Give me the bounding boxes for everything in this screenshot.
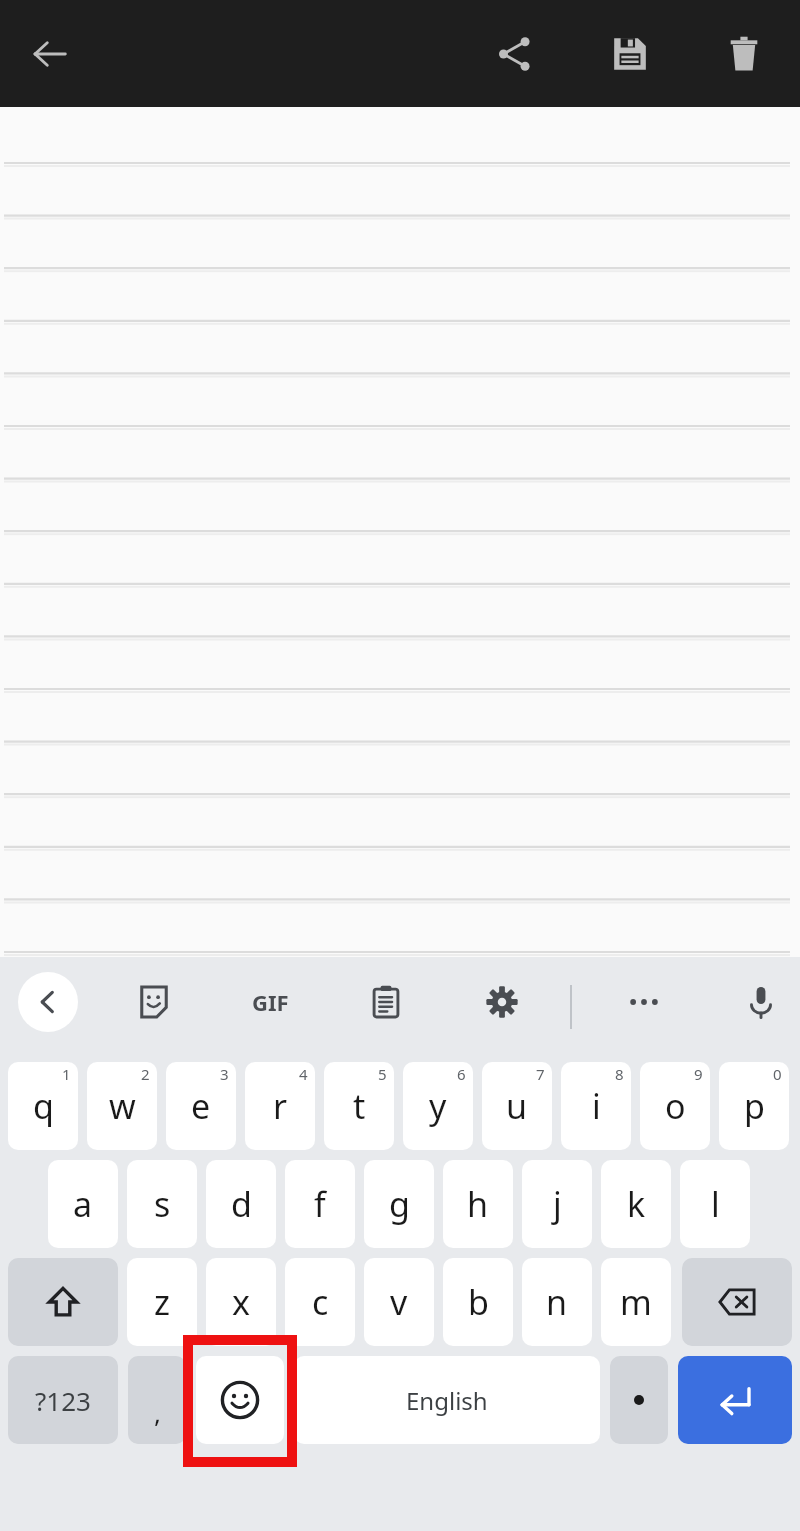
button[interactable]: g <box>364 1160 434 1248</box>
staticText: c <box>312 1279 329 1325</box>
button[interactable]: m <box>601 1258 671 1346</box>
staticText: 9 <box>694 1064 703 1084</box>
button[interactable]: Stickers <box>124 972 184 1032</box>
button[interactable]: Emoji <box>196 1356 284 1444</box>
staticText: j <box>553 1181 562 1227</box>
button[interactable]: j <box>522 1160 592 1248</box>
staticText: 0 <box>773 1064 782 1084</box>
button[interactable]: GIF <box>240 972 300 1032</box>
staticText: 4 <box>299 1064 308 1084</box>
staticText: g <box>389 1181 410 1227</box>
staticText: GIF <box>252 987 289 1017</box>
staticText: English <box>406 1384 488 1417</box>
staticText: t <box>353 1083 366 1129</box>
staticText: x <box>232 1279 250 1325</box>
button[interactable]: Enter <box>678 1356 792 1444</box>
button[interactable]: Save <box>600 24 660 84</box>
staticText: u <box>506 1083 528 1129</box>
button[interactable]: u <box>482 1062 552 1150</box>
button[interactable]: English <box>294 1356 600 1444</box>
button[interactable]: Close toolbar <box>18 972 78 1032</box>
button[interactable]: Comma <box>128 1356 186 1444</box>
button[interactable]: s <box>127 1160 197 1248</box>
staticText: 3 <box>220 1064 229 1084</box>
staticText: 5 <box>378 1064 387 1084</box>
staticText: 6 <box>457 1064 466 1084</box>
staticText: , <box>154 1395 161 1430</box>
button[interactable]: ?123 <box>8 1356 118 1444</box>
button[interactable]: More options <box>614 972 674 1032</box>
button[interactable]: a <box>48 1160 118 1248</box>
staticText: v <box>390 1279 408 1325</box>
button[interactable]: k <box>601 1160 671 1248</box>
staticText: e <box>191 1083 211 1129</box>
staticText: l <box>711 1181 720 1227</box>
button[interactable]: q <box>8 1062 78 1150</box>
button[interactable]: e <box>166 1062 236 1150</box>
button[interactable]: t <box>324 1062 394 1150</box>
staticText: y <box>429 1083 447 1129</box>
button[interactable]: Delete <box>714 24 774 84</box>
button[interactable]: l <box>680 1160 750 1248</box>
staticText: r <box>273 1083 288 1129</box>
button[interactable]: Settings <box>472 972 532 1032</box>
button[interactable]: v <box>364 1258 434 1346</box>
staticText: s <box>154 1181 171 1227</box>
staticText: f <box>314 1181 326 1227</box>
staticText: m <box>620 1279 652 1325</box>
button[interactable]: f <box>285 1160 355 1248</box>
button[interactable]: r <box>245 1062 315 1150</box>
button[interactable]: h <box>443 1160 513 1248</box>
staticText: w <box>109 1083 136 1129</box>
staticText: z <box>154 1279 170 1325</box>
staticText: 7 <box>536 1064 545 1084</box>
staticText: n <box>546 1279 568 1325</box>
button[interactable]: c <box>285 1258 355 1346</box>
staticText: d <box>231 1181 252 1227</box>
staticText: a <box>73 1181 93 1227</box>
button[interactable]: Back <box>20 24 80 84</box>
button[interactable]: Voice input <box>731 972 791 1032</box>
button[interactable]: d <box>206 1160 276 1248</box>
staticText: k <box>627 1181 646 1227</box>
button[interactable]: w <box>87 1062 157 1150</box>
staticText: p <box>744 1083 765 1129</box>
button[interactable]: Share <box>485 24 545 84</box>
button[interactable]: Backspace <box>682 1258 792 1346</box>
staticText: ?123 <box>35 1383 91 1418</box>
button[interactable]: o <box>640 1062 710 1150</box>
button[interactable]: i <box>561 1062 631 1150</box>
button[interactable]: b <box>443 1258 513 1346</box>
button[interactable]: n <box>522 1258 592 1346</box>
button[interactable]: Shift <box>8 1258 118 1346</box>
staticText: 1 <box>62 1064 71 1084</box>
button[interactable] <box>0 107 800 957</box>
staticText: h <box>467 1181 489 1227</box>
button[interactable]: Period <box>610 1356 668 1444</box>
staticText: q <box>33 1083 54 1129</box>
button[interactable]: Clipboard <box>356 972 416 1032</box>
staticText: o <box>665 1083 686 1129</box>
staticText: b <box>468 1279 489 1325</box>
button[interactable]: y <box>403 1062 473 1150</box>
button[interactable]: x <box>206 1258 276 1346</box>
staticText: 8 <box>615 1064 624 1084</box>
button[interactable]: p <box>719 1062 789 1150</box>
button[interactable]: z <box>127 1258 197 1346</box>
staticText: i <box>592 1083 601 1129</box>
staticText: 2 <box>141 1064 150 1084</box>
